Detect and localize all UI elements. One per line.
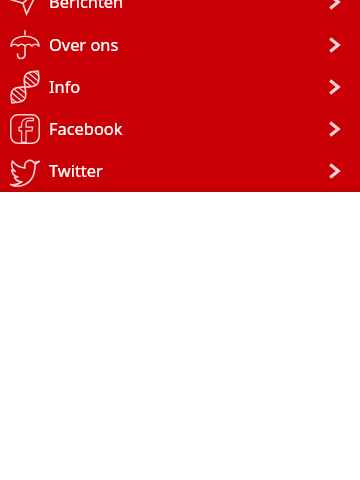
button[interactable]: Info — [0, 66, 360, 108]
staticText: Berichten — [49, 0, 124, 12]
staticText: Over ons — [49, 33, 119, 55]
staticText: Twitter — [49, 159, 103, 181]
staticText: Info — [49, 75, 81, 97]
button[interactable]: Over ons — [0, 24, 360, 66]
staticText: Facebook — [49, 117, 123, 139]
button[interactable]: Twitter — [0, 150, 360, 192]
button[interactable]: Berichten — [0, 0, 360, 23]
button[interactable]: Facebook — [0, 108, 360, 150]
